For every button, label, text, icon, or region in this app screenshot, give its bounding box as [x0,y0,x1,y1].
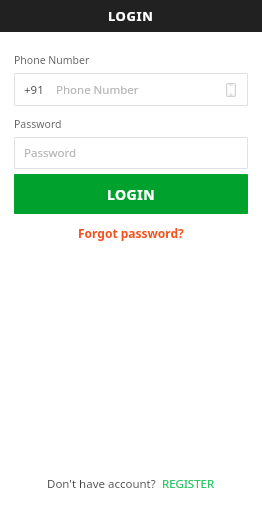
button[interactable]: +91 [14,73,248,106]
staticText: Don't have account? [47,476,156,492]
staticText: REGISTER [162,476,215,492]
staticText: Forgot password? [78,225,184,241]
staticText: Password [14,117,62,131]
other: Phone [224,83,238,97]
staticText: LOGIN [107,185,156,204]
button[interactable]: LOGIN [14,174,248,214]
staticText: Password [24,145,77,161]
button[interactable]: Forgot password? [72,223,190,243]
button[interactable]: REGISTER [161,474,216,494]
staticText: LOGIN [108,7,154,25]
staticText: Phone Number [14,53,90,67]
staticText: +91 [24,82,44,98]
staticText: Phone Number [56,82,139,98]
button[interactable]: Password [14,137,248,169]
